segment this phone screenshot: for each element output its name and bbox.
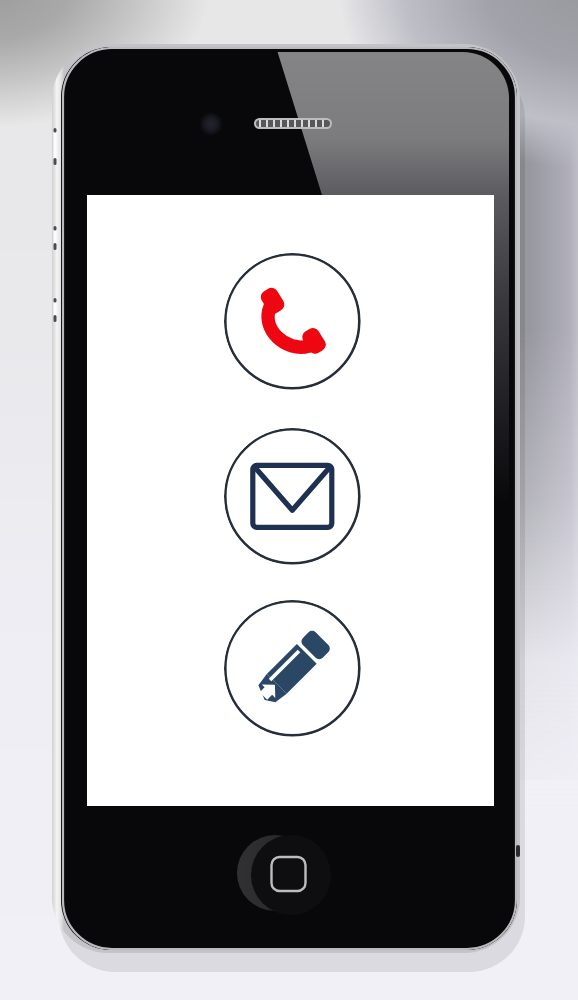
button[interactable]: Email	[224, 428, 361, 565]
button[interactable]: Call	[224, 253, 361, 390]
button[interactable]: Write a message	[224, 600, 361, 737]
